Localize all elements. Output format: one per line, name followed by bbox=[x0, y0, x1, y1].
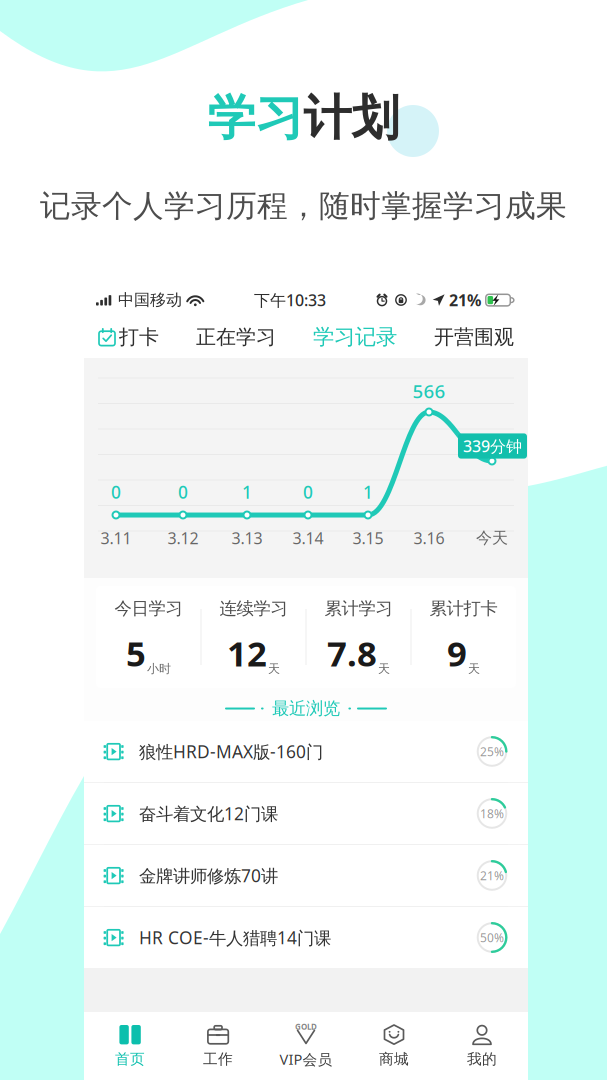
staticText: 9 bbox=[447, 630, 467, 676]
button[interactable]: HR COE-牛人猎聘14门课 bbox=[84, 907, 528, 968]
staticText: 18% bbox=[480, 805, 504, 821]
staticText: 记录个人学习历程，随时掌握学习成果 bbox=[40, 187, 567, 225]
button[interactable]: 首页 bbox=[86, 1016, 174, 1076]
staticText: 累计打卡 bbox=[429, 598, 497, 619]
staticText: 下午10:33 bbox=[254, 289, 326, 311]
staticText: 学习 bbox=[207, 88, 303, 147]
staticText: 天 bbox=[378, 661, 390, 676]
staticText: 正在学习 bbox=[196, 325, 276, 349]
staticText: 0 bbox=[178, 480, 188, 503]
staticText: HR COE-牛人猎聘14门课 bbox=[139, 926, 331, 949]
staticText: 21% bbox=[480, 867, 504, 883]
staticText: 中国移动 bbox=[113, 290, 187, 310]
staticText: 天 bbox=[468, 661, 480, 676]
staticText: 3.14 bbox=[292, 527, 323, 549]
staticText: 0 bbox=[111, 480, 121, 503]
staticText: 566 bbox=[412, 379, 445, 403]
staticText: 3.12 bbox=[167, 527, 198, 549]
staticText: 金牌讲师修炼70讲 bbox=[139, 864, 278, 887]
button[interactable]: 工作 bbox=[174, 1016, 262, 1076]
staticText: 1 bbox=[242, 480, 252, 503]
staticText: 学习记录 bbox=[313, 324, 397, 350]
staticText: 天 bbox=[268, 661, 280, 676]
staticText: 今日学习 bbox=[114, 598, 182, 619]
staticText: 狼性HRD-MAX版-160门 bbox=[139, 740, 323, 763]
staticText: 3.11 bbox=[100, 527, 131, 549]
button[interactable]: 商城 bbox=[350, 1016, 438, 1076]
button[interactable]: 狼性HRD-MAX版-160门 bbox=[84, 721, 528, 782]
staticText: 计划 bbox=[303, 88, 399, 147]
staticText: 50% bbox=[480, 929, 504, 945]
staticText: 累计学习 bbox=[324, 598, 392, 619]
staticText: 连续学习 bbox=[219, 598, 287, 619]
staticText: 0 bbox=[303, 480, 313, 503]
staticText: 7.8 bbox=[327, 630, 377, 676]
button[interactable]: 学习记录 bbox=[313, 317, 397, 357]
staticText: 最近浏览 bbox=[272, 698, 340, 719]
staticText: 商城 bbox=[379, 1050, 409, 1068]
staticText: 339分钟 bbox=[463, 435, 522, 457]
staticText: VIP会员 bbox=[279, 1049, 332, 1069]
staticText: GOLD bbox=[295, 1021, 317, 1032]
staticText: 奋斗着文化12门课 bbox=[139, 802, 278, 825]
button[interactable]: 我的 bbox=[438, 1016, 526, 1076]
button[interactable]: 打卡 bbox=[98, 318, 159, 356]
staticText: 3.15 bbox=[352, 527, 383, 549]
staticText: 小时 bbox=[147, 661, 171, 676]
button[interactable]: 正在学习 bbox=[196, 318, 276, 356]
staticText: 首页 bbox=[115, 1050, 145, 1068]
staticText: 25% bbox=[480, 743, 504, 759]
staticText: 我的 bbox=[467, 1050, 497, 1068]
staticText: 今天 bbox=[476, 528, 508, 548]
button[interactable]: 金牌讲师修炼70讲 bbox=[84, 845, 528, 906]
staticText: 工作 bbox=[203, 1050, 233, 1068]
staticText: 打卡 bbox=[119, 325, 159, 349]
button[interactable]: 奋斗着文化12门课 bbox=[84, 783, 528, 844]
button[interactable]: GOLD bbox=[262, 1016, 350, 1076]
staticText: 3.13 bbox=[231, 527, 262, 549]
staticText: 21% bbox=[445, 289, 485, 311]
staticText: 5 bbox=[126, 630, 146, 676]
staticText: 开营围观 bbox=[434, 325, 514, 349]
staticText: 12 bbox=[227, 630, 267, 676]
staticText: 1 bbox=[363, 480, 373, 503]
button[interactable]: 开营围观 bbox=[434, 318, 514, 356]
staticText: 3.16 bbox=[413, 527, 444, 549]
